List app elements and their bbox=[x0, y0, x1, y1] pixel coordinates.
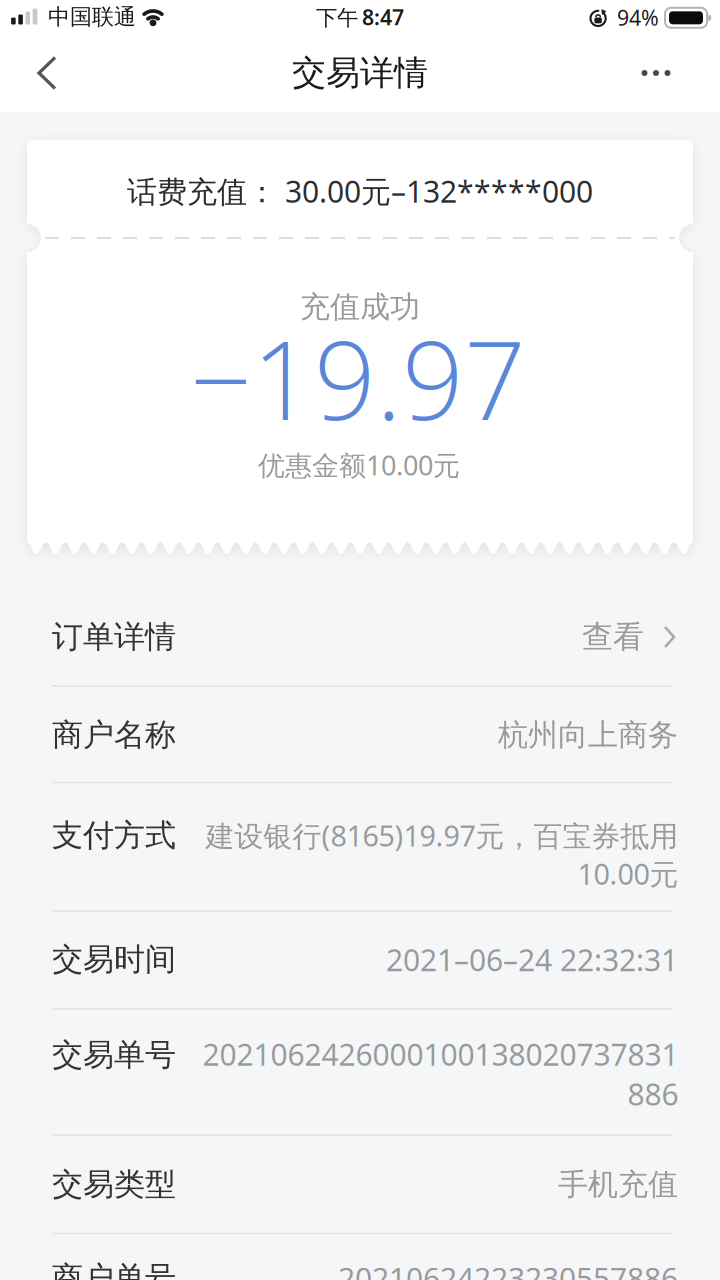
staticText: 交易详情 bbox=[292, 52, 428, 94]
staticText: 2021–06–24 22:32:31 bbox=[386, 940, 678, 979]
staticText: 杭州向上商务 bbox=[498, 717, 678, 753]
staticText: 交易类型 bbox=[52, 1165, 176, 1204]
staticText: 手机充值 bbox=[558, 1166, 678, 1203]
staticText: 订单详情 bbox=[52, 618, 176, 656]
staticText: 商户单号 bbox=[52, 1259, 176, 1280]
staticText: 交易时间 bbox=[52, 940, 176, 979]
staticText: −19.97 bbox=[190, 306, 526, 450]
staticText: 94% bbox=[617, 3, 659, 32]
staticText: 中国联通 bbox=[48, 3, 136, 30]
staticText: 查看 bbox=[582, 618, 644, 656]
staticText: 20210624223230557886 bbox=[338, 1258, 678, 1280]
button[interactable]: 更多 bbox=[624, 51, 688, 95]
button[interactable]: 订单详情 bbox=[52, 588, 680, 685]
staticText: 下午 8:47 bbox=[316, 3, 404, 31]
staticText: 交易单号 bbox=[52, 1036, 176, 1074]
staticText: 建设银行(8165)19.97元，百宝券抵用 10.00元 bbox=[205, 816, 678, 893]
staticText: 2021062426000100138020737831 886 bbox=[202, 1034, 678, 1114]
staticText: 商户名称 bbox=[52, 716, 176, 754]
staticText: 支付方式 bbox=[52, 816, 176, 855]
staticText: 优惠金额10.00元 bbox=[258, 447, 460, 483]
staticText: 充值成功 bbox=[300, 289, 420, 325]
staticText: 话费充值： 30.00元–132*****000 bbox=[127, 171, 593, 211]
button[interactable]: 返回 bbox=[0, 48, 94, 98]
